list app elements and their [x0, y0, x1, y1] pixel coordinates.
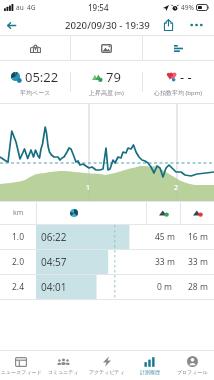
staticText: 33 m	[155, 256, 175, 268]
button[interactable]: アクティビティ	[85, 351, 128, 380]
staticText: 2.4	[12, 281, 25, 293]
button[interactable]: コミュニティ	[42, 351, 85, 380]
staticText: 79	[106, 68, 121, 86]
staticText: 2	[174, 183, 179, 193]
staticText: アクティビティ	[89, 369, 125, 375]
button[interactable]: ニュースフィード	[0, 351, 42, 380]
staticText: 05:22	[25, 68, 59, 86]
staticText: 28 m	[188, 281, 208, 293]
button[interactable]: - -	[143, 61, 214, 103]
button[interactable]: 79	[71, 61, 142, 103]
staticText: 04:57	[41, 255, 67, 269]
button[interactable]: 05:22	[0, 61, 70, 103]
staticText: au	[16, 3, 24, 12]
staticText: 1.0	[12, 231, 25, 243]
button[interactable]: Back	[0, 15, 22, 35]
staticText: 33 m	[188, 256, 208, 268]
staticText: 16 m	[188, 231, 208, 243]
staticText: km	[13, 208, 24, 218]
staticText: 2020/09/30 - 19:39	[65, 19, 150, 32]
staticText: 心拍数平均 (bpm)	[154, 89, 203, 97]
staticText: 上昇高度 (m)	[89, 89, 124, 97]
button[interactable]: 計測履歴	[128, 351, 171, 380]
staticText: コミュニティ	[48, 369, 79, 375]
staticText: 49%	[181, 3, 194, 12]
staticText: 0 m	[157, 281, 173, 293]
staticText: 2.0	[12, 256, 25, 268]
button[interactable]: プロフィール	[171, 351, 214, 380]
button[interactable]: 1.0	[0, 225, 214, 249]
staticText: 計測履歴	[140, 369, 160, 375]
staticText: 19:54	[88, 2, 109, 13]
button[interactable]: More options	[183, 15, 209, 35]
button[interactable]: Share	[156, 15, 180, 35]
staticText: 平均ペース	[20, 89, 51, 97]
staticText: 4G	[27, 3, 36, 12]
button[interactable]: Splits	[143, 36, 214, 60]
button[interactable]: Map	[0, 36, 70, 60]
staticText: ニュースフィード	[1, 369, 42, 375]
staticText: 04:01	[41, 280, 67, 294]
staticText: 1	[86, 183, 91, 193]
staticText: - -	[180, 68, 192, 86]
button[interactable]: 2.0	[0, 250, 214, 274]
staticText: 06:22	[41, 230, 67, 244]
staticText: 45 m	[155, 231, 175, 243]
button[interactable]: 2.4	[0, 275, 214, 299]
button[interactable]: Photos	[71, 36, 142, 60]
staticText: プロフィール	[177, 369, 208, 375]
